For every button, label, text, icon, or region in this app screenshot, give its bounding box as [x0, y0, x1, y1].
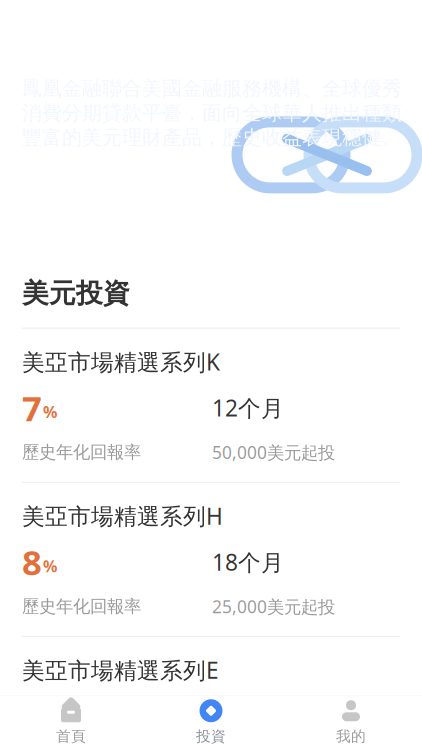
staticText: 美元投資 — [22, 277, 130, 310]
staticText: 50,000美元起投 — [212, 441, 335, 464]
staticText: 美亞市場精選系列H — [22, 501, 223, 531]
staticText: 鳳凰金融聯合美國金融服務機構、全球優秀消費分期貸款平臺，面向全球華人推出種類豐富… — [22, 76, 402, 150]
staticText: 歷史年化回報率 — [22, 596, 141, 617]
button[interactable]: 投資 — [141, 698, 281, 746]
staticText: 投資 — [196, 727, 226, 745]
button[interactable]: 美亞市場精選系列E — [0, 637, 422, 750]
staticText: 25,000美元起投 — [212, 595, 335, 618]
staticText: % — [43, 401, 57, 422]
staticText: 3个月 — [212, 701, 271, 731]
button[interactable]: 首頁 — [1, 698, 141, 746]
staticText: 歷史年化回報率 — [22, 442, 141, 463]
staticText: 美亞市場精選系列E — [22, 655, 219, 685]
staticText: 18个月 — [212, 547, 284, 577]
button[interactable]: 美亞市場精選系列H — [0, 483, 422, 636]
staticText: 我的 — [336, 727, 366, 745]
staticText: 12个月 — [212, 393, 284, 423]
staticText: 首頁 — [56, 727, 86, 745]
button[interactable]: 我的 — [281, 698, 421, 746]
staticText: 7 — [22, 385, 42, 431]
button[interactable]: 美亞市場精選系列K — [0, 329, 422, 482]
staticText: 美亞市場精選系列K — [22, 347, 220, 377]
staticText: % — [43, 555, 57, 576]
staticText: 8 — [22, 539, 42, 585]
